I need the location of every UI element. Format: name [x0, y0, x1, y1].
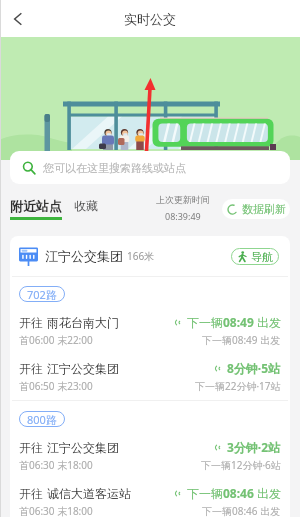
staticText: 江宁公交集团 [47, 440, 119, 455]
staticText: 下一辆08:46 出发 [187, 485, 281, 501]
staticText: 诚信大道客运站 [47, 486, 131, 501]
button[interactable]: Back [6, 7, 30, 31]
staticText: 导航 [251, 250, 273, 264]
staticText: 您可以在这里搜索路线或站点 [43, 161, 186, 175]
staticText: 江宁公交集团 [47, 361, 119, 376]
button[interactable]: 附近站点 [10, 198, 62, 220]
staticText: 开往 [19, 485, 47, 501]
staticText: 江宁公交集团 [45, 248, 123, 264]
staticText: 首06:30 末18:00 [19, 504, 93, 517]
staticText: 首06:00 末22:00 [19, 333, 93, 347]
button[interactable]: 800路 [10, 411, 290, 517]
button[interactable]: 702路 [10, 286, 290, 396]
staticText: 800路 [27, 412, 57, 427]
staticText: 开往 [19, 439, 47, 455]
staticText: 实时公交 [124, 11, 176, 27]
button[interactable]: 数据刷新 [222, 199, 290, 219]
staticText: 收藏 [74, 198, 98, 213]
staticText: 08:39:49 [165, 210, 201, 222]
staticText: 开往 [19, 360, 47, 376]
staticText: 下一辆08:49 出发 [202, 333, 281, 347]
staticText: 3分钟·2站 [227, 439, 281, 455]
staticText: 数据刷新 [242, 202, 286, 216]
staticText: 下一辆22分钟·17站 [195, 379, 281, 393]
staticText: 下一辆08:46 出发 [202, 504, 281, 517]
staticText: 166米 [127, 249, 155, 263]
staticText: 附近站点 [10, 198, 62, 214]
staticText: 首06:30 末18:00 [19, 458, 93, 472]
button[interactable]: 收藏 [74, 198, 98, 213]
staticText: 702路 [27, 287, 57, 302]
staticText: 雨花台南大门 [47, 315, 119, 330]
staticText: 下一辆08:49 出发 [187, 314, 281, 330]
staticText: 开往 [19, 314, 47, 330]
staticText: 8分钟·5站 [227, 360, 281, 376]
staticText: 首06:50 末23:00 [19, 379, 93, 393]
staticText: 上次更新时间 [156, 194, 210, 205]
button[interactable]: 导航 [231, 248, 279, 265]
button[interactable]: 您可以在这里搜索路线或站点 [10, 151, 290, 184]
button[interactable]: 江宁公交集团 [10, 236, 290, 276]
staticText: 下一辆12分钟·6站 [201, 458, 281, 472]
